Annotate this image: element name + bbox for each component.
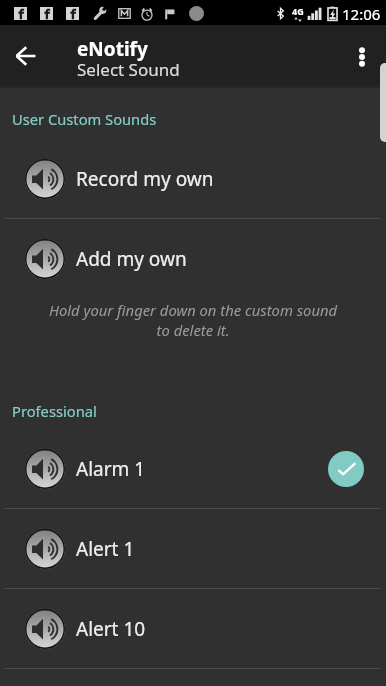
button[interactable]: Alarm 1	[0, 429, 386, 509]
button[interactable]: Record my own	[0, 139, 386, 219]
staticText: Record my own	[76, 166, 214, 192]
staticText: Hold your finger down on the custom soun…	[44, 300, 342, 340]
staticText: Alarm 1	[76, 456, 146, 482]
staticText: Professional	[12, 401, 97, 421]
staticText: 4G	[292, 5, 304, 17]
button[interactable]: More options	[341, 36, 383, 78]
staticText: Select Sound	[77, 58, 180, 81]
button[interactable]: Overflow menu	[380, 63, 386, 142]
button[interactable]: Alert 1	[0, 509, 386, 589]
button[interactable]: Add my own	[0, 219, 386, 299]
staticText: User Custom Sounds	[12, 109, 157, 129]
staticText: 12:06	[342, 4, 381, 24]
button[interactable]: Alert 10	[0, 589, 386, 669]
button[interactable]: Back	[7, 37, 45, 75]
staticText: Alert 1	[76, 536, 135, 562]
staticText: Alert 10	[76, 616, 146, 642]
staticText: eNotify	[77, 36, 148, 62]
staticText: Add my own	[76, 246, 187, 272]
